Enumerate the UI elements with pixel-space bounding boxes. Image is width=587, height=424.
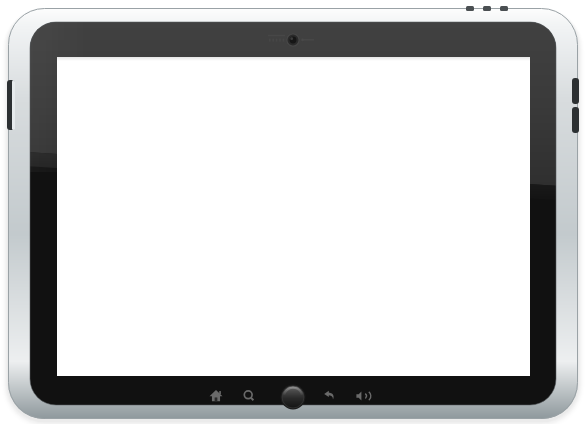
button[interactable]: Home xyxy=(205,386,227,404)
button[interactable]: Back xyxy=(318,386,340,404)
button[interactable]: Volume down xyxy=(572,107,581,133)
button[interactable]: Search xyxy=(238,386,260,404)
button[interactable]: Top ports xyxy=(463,4,503,14)
button[interactable]: Home button xyxy=(282,386,304,408)
button[interactable]: Volume xyxy=(350,386,372,404)
button[interactable]: Side key left xyxy=(6,80,14,130)
button[interactable]: Volume up xyxy=(572,78,581,104)
